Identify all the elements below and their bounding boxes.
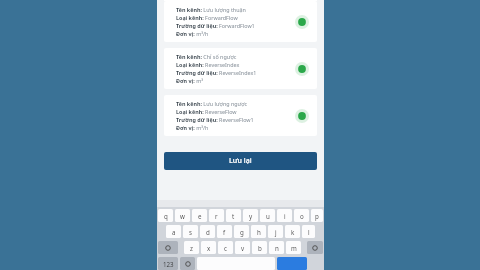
staticText: b — [258, 244, 262, 252]
button[interactable]: u — [260, 209, 275, 222]
button[interactable]: l — [302, 225, 315, 238]
button[interactable]: r — [209, 209, 224, 222]
button[interactable]: b — [252, 241, 267, 254]
button[interactable]: Emoji — [180, 257, 195, 270]
staticText: t — [232, 212, 235, 220]
staticText: k — [291, 228, 295, 236]
staticText: z — [190, 244, 193, 252]
staticText: 123 — [163, 260, 174, 268]
button[interactable]: d — [200, 225, 215, 238]
button[interactable]: i — [277, 209, 292, 222]
button[interactable]: a — [166, 225, 181, 238]
staticText: Trường dữ liệu: ReverseIndex1 — [176, 69, 257, 76]
button[interactable]: Lưu lại — [164, 152, 317, 170]
staticText: Lưu lại — [229, 156, 252, 166]
staticText: i — [284, 212, 286, 220]
staticText: e — [198, 212, 202, 220]
button[interactable]: f — [217, 225, 232, 238]
button[interactable]: v — [235, 241, 250, 254]
staticText: Đơn vị: m³ — [176, 77, 204, 84]
staticText: l — [308, 228, 310, 236]
button[interactable]: q — [158, 209, 173, 222]
staticText: n — [275, 244, 279, 252]
button[interactable]: h — [251, 225, 266, 238]
staticText: u — [266, 212, 270, 220]
staticText: Trường dữ liệu: ForwardFlow1 — [176, 22, 255, 29]
button[interactable]: c — [218, 241, 233, 254]
button[interactable]: Enter — [277, 257, 307, 270]
button[interactable]: t — [226, 209, 241, 222]
staticText: Loại kênh: ForwardFlow — [176, 14, 238, 21]
staticText: Đơn vị: m³/h — [176, 30, 209, 37]
staticText: h — [257, 228, 261, 236]
staticText: Tên kênh: Chỉ số ngược — [176, 53, 237, 60]
button[interactable]: z — [184, 241, 199, 254]
button[interactable]: Tên kênh: Chỉ số ngược — [164, 48, 317, 89]
staticText: Tên kênh: Lưu lượng ngược — [176, 100, 248, 107]
staticText: y — [249, 212, 253, 220]
staticText: o — [300, 212, 304, 220]
staticText: v — [241, 244, 245, 252]
staticText: c — [224, 244, 227, 252]
button[interactable]: Tên kênh: Lưu lượng thuận — [164, 1, 317, 42]
staticText: a — [172, 228, 176, 236]
button[interactable]: m — [286, 241, 301, 254]
button[interactable]: x — [201, 241, 216, 254]
button[interactable]: Shift — [158, 241, 178, 254]
staticText: f — [223, 228, 226, 236]
staticText: Tên kênh: Lưu lượng thuận — [176, 6, 246, 13]
staticText: q — [164, 212, 168, 220]
button[interactable]: k — [285, 225, 300, 238]
staticText: d — [206, 228, 210, 236]
button[interactable]: e — [192, 209, 207, 222]
staticText: m — [291, 244, 297, 252]
staticText: s — [189, 228, 192, 236]
staticText: x — [207, 244, 211, 252]
button[interactable]: Trạng thái kênh — [295, 109, 309, 123]
button[interactable]: n — [269, 241, 284, 254]
button[interactable]: p — [311, 209, 323, 222]
button[interactable]: s — [183, 225, 198, 238]
button[interactable]: w — [175, 209, 190, 222]
button[interactable]: Tên kênh: Lưu lượng ngược — [164, 95, 317, 136]
staticText: Đơn vị: m³/h — [176, 124, 209, 131]
staticText: Loại kênh: ReverseFlow — [176, 108, 237, 115]
staticText: g — [240, 228, 244, 236]
button[interactable]: y — [243, 209, 258, 222]
staticText: r — [215, 212, 218, 220]
staticText: Loại kênh: ReverseIndex — [176, 61, 240, 68]
staticText: p — [315, 212, 319, 220]
button[interactable]: Trạng thái kênh — [295, 15, 309, 29]
button[interactable]: Backspace — [307, 241, 323, 254]
button[interactable]: o — [294, 209, 309, 222]
button[interactable]: Trạng thái kênh — [295, 62, 309, 76]
staticText: w — [180, 212, 185, 220]
staticText: Trường dữ liệu: ReverseFlow1 — [176, 116, 254, 123]
staticText: j — [275, 228, 277, 236]
button[interactable]: g — [234, 225, 249, 238]
button[interactable]: j — [268, 225, 283, 238]
button[interactable]: Numbers — [158, 257, 178, 270]
